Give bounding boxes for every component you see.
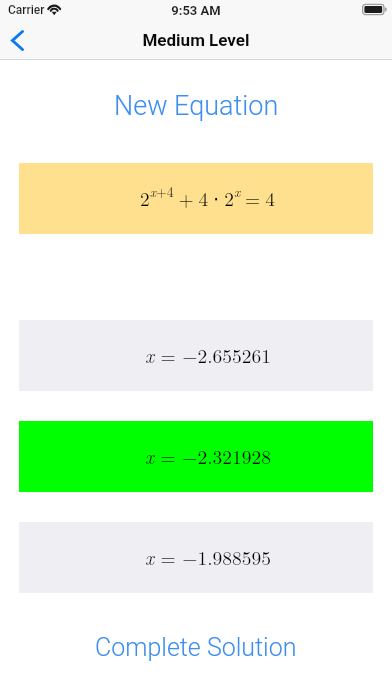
button[interactable]: New Equation <box>0 90 392 122</box>
staticText: Carrier <box>8 3 45 17</box>
button[interactable]: Back <box>0 22 48 59</box>
staticText: x = −1.988595 <box>145 543 272 571</box>
staticText: x = −2.655261 <box>145 341 272 369</box>
staticText: Medium Level <box>0 30 392 50</box>
staticText: 9:53 AM <box>0 3 392 18</box>
staticText: Complete Solution <box>95 633 297 662</box>
staticText: 2x+4 + 4 ⋅ 2x = 4 <box>140 182 275 211</box>
staticText: x = −2.321928 <box>145 442 272 470</box>
button[interactable]: 2x+4 + 4 ⋅ 2x = 4 <box>19 163 373 234</box>
button[interactable]: Complete Solution <box>0 631 392 663</box>
button[interactable]: x = −2.321928 <box>19 421 373 492</box>
button[interactable]: x = −2.655261 <box>19 320 373 391</box>
button[interactable]: x = −1.988595 <box>19 522 373 593</box>
staticText: New Equation <box>114 90 279 122</box>
